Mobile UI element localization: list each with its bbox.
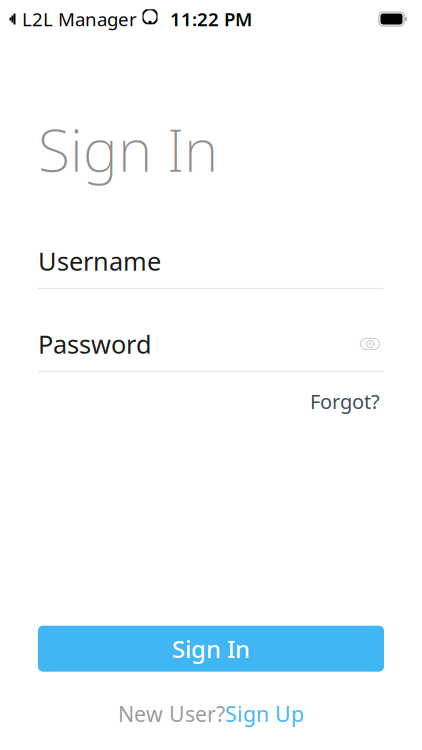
- staticText: Sign Up: [225, 700, 304, 728]
- button[interactable]: New User?: [0, 694, 422, 734]
- staticText: L2L Manager: [22, 7, 137, 31]
- button[interactable]: Show password: [356, 332, 384, 356]
- staticText: Password: [38, 327, 152, 361]
- staticText: Forgot?: [310, 388, 380, 414]
- staticText: 11:22 PM: [170, 7, 252, 31]
- staticText: New User?: [118, 700, 225, 728]
- button[interactable]: Sign In: [38, 626, 384, 672]
- staticText: Sign In: [172, 633, 250, 665]
- button[interactable]: Forgot?: [306, 384, 384, 418]
- staticText: Username: [38, 244, 161, 278]
- staticText: Sign In: [38, 110, 218, 188]
